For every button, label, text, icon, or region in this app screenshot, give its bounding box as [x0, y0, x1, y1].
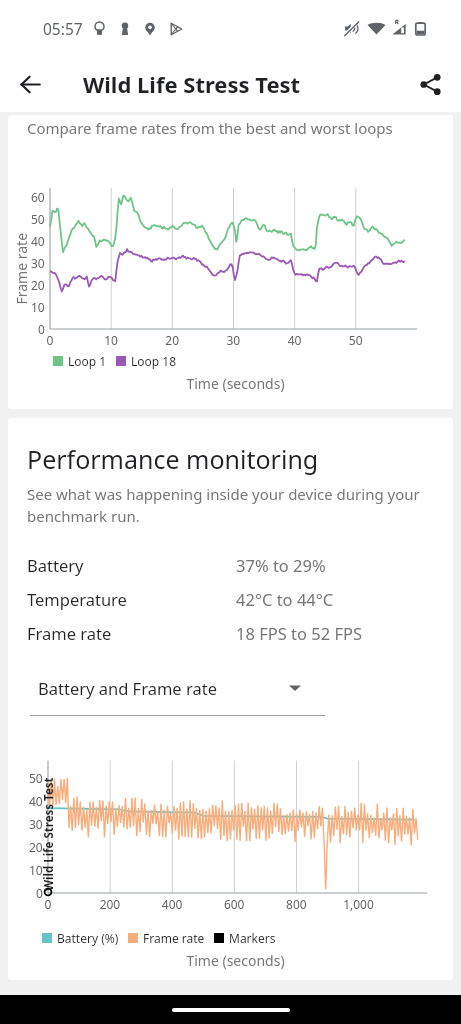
staticText: Wild Life Stress Test	[83, 69, 301, 99]
button[interactable]: Share	[407, 61, 453, 107]
staticText: See what was happening inside your devic…	[27, 484, 429, 527]
staticText: Temperature	[27, 588, 236, 610]
staticText: 42°C to 44°C	[236, 588, 334, 610]
staticText: Frame rate	[27, 622, 236, 644]
staticText: 18 FPS to 52 FPS	[236, 622, 363, 644]
staticText: Compare frame rates from the best and wo…	[27, 118, 393, 138]
staticText: Frame rate	[143, 930, 205, 946]
staticText: Time (seconds)	[50, 374, 421, 393]
button[interactable]: Battery and Frame rate	[30, 666, 325, 716]
staticText: Markers	[229, 930, 276, 946]
button[interactable]: Back	[7, 61, 53, 107]
staticText: Battery (%)	[57, 930, 119, 946]
staticText: Battery and Frame rate	[38, 677, 217, 699]
staticText: Performance monitoring	[27, 442, 319, 476]
staticText: Time (seconds)	[50, 951, 421, 970]
staticText: 37% to 29%	[236, 554, 326, 576]
staticText: Loop 1	[68, 353, 107, 369]
staticText: Loop 18	[131, 353, 177, 369]
staticText: 05:57	[43, 18, 83, 39]
staticText: Battery	[27, 554, 236, 576]
